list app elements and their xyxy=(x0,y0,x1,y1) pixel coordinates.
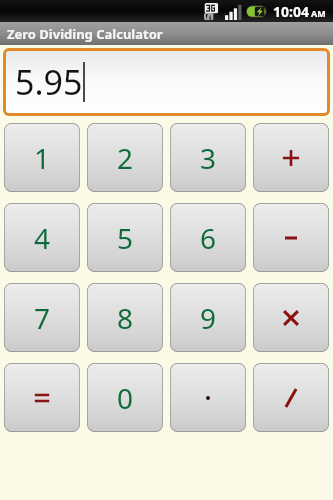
button[interactable]: 0 xyxy=(87,363,163,432)
staticText: 9 xyxy=(200,299,217,337)
button[interactable] xyxy=(253,203,329,272)
button[interactable]: 3 xyxy=(170,123,246,192)
button[interactable] xyxy=(4,363,80,432)
staticText: Zero Dividing Calculator xyxy=(7,25,163,43)
button[interactable]: 8 xyxy=(87,283,163,352)
button[interactable]: 2 xyxy=(87,123,163,192)
staticText: AM xyxy=(311,7,326,19)
staticText: 3 xyxy=(200,139,217,177)
button[interactable]: 5 xyxy=(87,203,163,272)
other: Signal strength xyxy=(225,4,242,20)
button[interactable]: 4 xyxy=(4,203,80,272)
button[interactable]: 6 xyxy=(170,203,246,272)
staticText: 5.95 xyxy=(15,59,83,105)
other: 3G network xyxy=(204,3,222,20)
staticText: 7 xyxy=(34,299,51,337)
staticText: 10:04 xyxy=(273,2,309,21)
staticText: 2 xyxy=(117,139,134,177)
button[interactable] xyxy=(253,283,329,352)
button[interactable] xyxy=(253,123,329,192)
button[interactable] xyxy=(253,363,329,432)
staticText: 1 xyxy=(34,139,51,177)
button[interactable]: 1 xyxy=(4,123,80,192)
staticText: 6 xyxy=(200,219,217,257)
button[interactable]: 9 xyxy=(170,283,246,352)
button[interactable]: 5.95 xyxy=(6,51,327,113)
staticText: 8 xyxy=(117,299,134,337)
staticText: 4 xyxy=(34,219,51,257)
button[interactable] xyxy=(170,363,246,432)
staticText: 0 xyxy=(117,379,134,417)
staticText: 5 xyxy=(117,219,134,257)
other: Battery charging xyxy=(246,5,267,18)
button[interactable]: 7 xyxy=(4,283,80,352)
